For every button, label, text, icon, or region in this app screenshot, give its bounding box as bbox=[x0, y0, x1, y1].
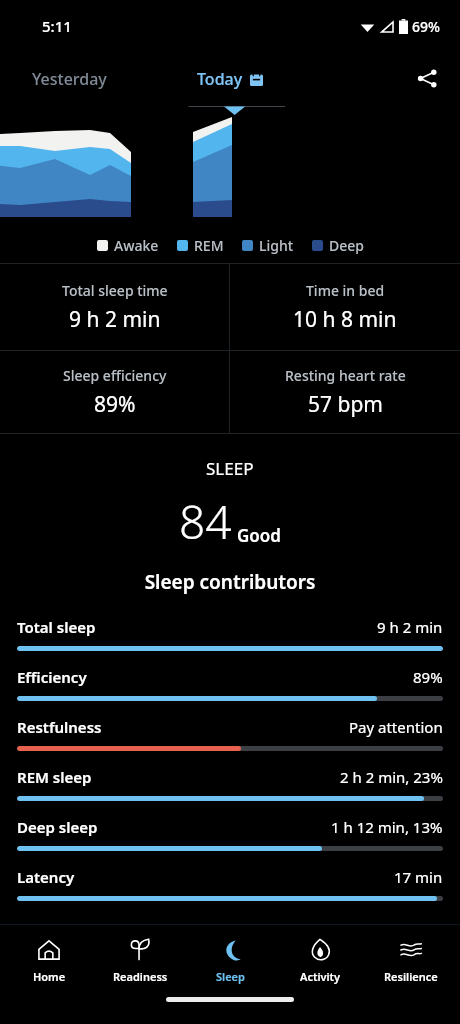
staticText: 89% bbox=[413, 667, 443, 687]
staticText: 9 h 2 min bbox=[377, 617, 443, 637]
staticText: Activity bbox=[300, 969, 341, 984]
staticText: Sleep efficiency bbox=[63, 366, 167, 385]
staticText: Pay attention bbox=[349, 717, 443, 737]
staticText: 1 h 12 min, 13% bbox=[331, 817, 443, 837]
button[interactable]: Today bbox=[185, 62, 275, 96]
button[interactable]: Efficiency bbox=[0, 667, 460, 717]
button[interactable]: Resting heart rate bbox=[230, 351, 460, 433]
button[interactable]: Latency bbox=[0, 867, 460, 917]
staticText: Time in bed bbox=[306, 281, 385, 300]
staticText: Restfulness bbox=[17, 717, 102, 737]
staticText: REM sleep bbox=[17, 767, 92, 787]
button[interactable]: Share bbox=[409, 60, 446, 97]
staticText: Light bbox=[259, 236, 294, 255]
staticText: Total sleep bbox=[17, 617, 96, 637]
staticText: 57 bpm bbox=[308, 390, 383, 419]
staticText: 69% bbox=[412, 17, 440, 36]
button[interactable]: Yesterday bbox=[18, 62, 121, 96]
staticText: Awake bbox=[114, 236, 159, 255]
staticText: 84 bbox=[179, 490, 232, 553]
staticText: Total sleep time bbox=[62, 281, 168, 300]
button[interactable]: Restfulness bbox=[0, 717, 460, 767]
button[interactable]: Total sleep time bbox=[0, 264, 229, 350]
staticText: Latency bbox=[17, 867, 75, 887]
staticText: Efficiency bbox=[17, 667, 87, 687]
button[interactable]: Time in bed bbox=[230, 264, 460, 350]
staticText: Deep bbox=[329, 236, 364, 255]
staticText: Readiness bbox=[113, 969, 168, 984]
staticText: 2 h 2 min, 23% bbox=[340, 767, 443, 787]
button[interactable]: REM sleep bbox=[0, 767, 460, 817]
button[interactable]: Sleep efficiency bbox=[0, 351, 229, 433]
button[interactable]: Home bbox=[8, 934, 90, 988]
button[interactable]: Sleep bbox=[189, 934, 271, 988]
staticText: Home bbox=[33, 969, 66, 984]
staticText: Resting heart rate bbox=[285, 366, 406, 385]
staticText: 17 min bbox=[394, 867, 443, 887]
staticText: SLEEP bbox=[206, 457, 254, 480]
staticText: Deep sleep bbox=[17, 817, 98, 837]
staticText: Today bbox=[197, 68, 243, 90]
button[interactable]: Total sleep bbox=[0, 617, 460, 667]
button[interactable]: Activity bbox=[279, 934, 361, 988]
staticText: 10 h 8 min bbox=[293, 305, 397, 334]
staticText: Resilience bbox=[384, 969, 438, 984]
staticText: Sleep bbox=[216, 969, 245, 984]
staticText: 9 h 2 min bbox=[69, 305, 161, 334]
button[interactable]: Readiness bbox=[99, 934, 181, 988]
staticText: Yesterday bbox=[32, 68, 107, 90]
staticText: REM bbox=[194, 236, 224, 255]
staticText: Sleep contributors bbox=[0, 569, 460, 595]
button[interactable]: Deep sleep bbox=[0, 817, 460, 867]
staticText: 5:11 bbox=[42, 16, 72, 36]
staticText: Good bbox=[237, 524, 281, 547]
staticText: 89% bbox=[94, 390, 136, 419]
button[interactable]: Resilience bbox=[370, 934, 452, 988]
